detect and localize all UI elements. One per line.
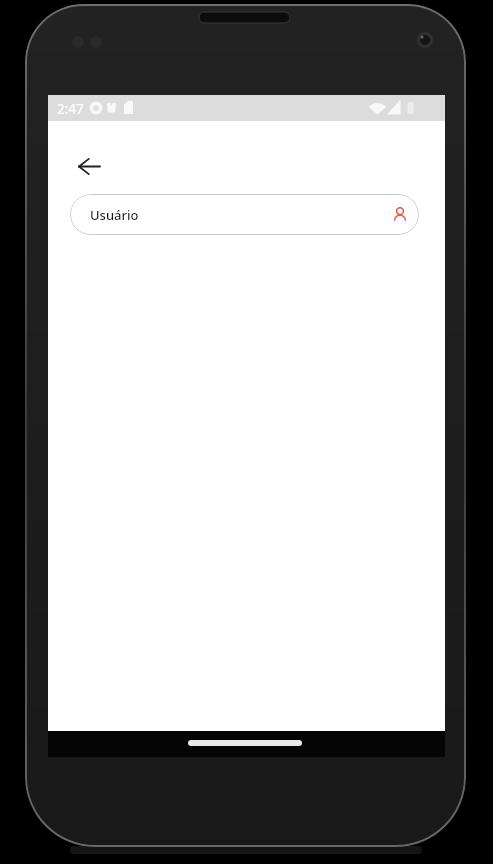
button[interactable] [65, 145, 111, 189]
button[interactable] [188, 740, 302, 746]
staticText: 2:47 [57, 100, 84, 118]
staticText: Usuário [90, 206, 139, 224]
button[interactable]: Usuário [70, 194, 419, 235]
